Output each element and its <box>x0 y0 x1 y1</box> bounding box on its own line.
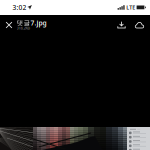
staticText: 3:02 <box>12 3 26 12</box>
button[interactable]: Download <box>114 17 129 33</box>
staticText: 318.2KB <box>16 25 30 31</box>
staticText: 댓글7.jpg <box>16 18 46 27</box>
button[interactable]: 댓글7.jpg <box>16 17 46 33</box>
staticText: LTE <box>126 4 135 11</box>
button[interactable]: Save to cloud <box>132 17 147 33</box>
button[interactable]: Close <box>1 17 16 33</box>
